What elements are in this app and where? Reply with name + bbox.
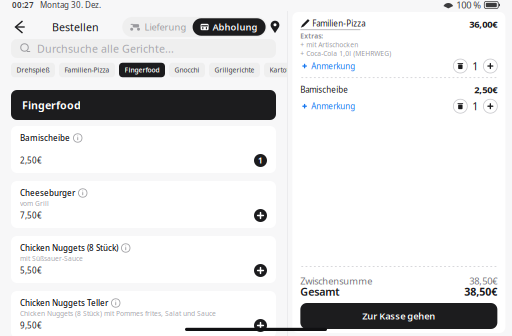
button[interactable]: Familien-Pizza (59, 63, 115, 77)
staticText: 1 (472, 99, 478, 113)
button[interactable]: Durchsuche alle Gerichte... (11, 39, 276, 58)
staticText: Fingerfood (124, 66, 159, 74)
staticText: Familien-Pizza (64, 66, 109, 74)
staticText: + mit Artischocken (300, 40, 358, 49)
staticText: Bamischeibe (20, 133, 70, 143)
button[interactable]: Entfernen (453, 59, 467, 73)
staticText: Chicken Nuggets Teller (20, 298, 108, 308)
staticText: Grillgerichte (214, 66, 254, 74)
staticText: 36,00€ (469, 18, 497, 30)
staticText: 38,50€ (469, 275, 497, 287)
staticText: Gesamt (300, 284, 339, 299)
staticText: 38,50€ (464, 284, 497, 299)
button[interactable]: Kartoffelecken (264, 63, 322, 77)
button[interactable]: Chicken Nuggets (8 Stück) (11, 236, 276, 283)
button[interactable]: Anmerkung (300, 101, 355, 111)
staticText: Chicken Nuggets (8 Stück) mit Pommes fri… (20, 309, 216, 318)
button[interactable]: Hinzufügen (483, 59, 497, 73)
staticText: 2,50€ (20, 155, 42, 166)
button[interactable]: Standort (267, 18, 283, 36)
button[interactable]: Zurück (9, 17, 29, 37)
button[interactable]: Zur Kasse gehen (300, 303, 497, 329)
button[interactable]: Gnocchi (169, 63, 205, 77)
staticText: Zwischensumme (300, 275, 372, 287)
staticText: 2,50€ (474, 83, 497, 96)
staticText: 1 (258, 155, 263, 166)
button[interactable]: Fingerfood (119, 63, 165, 77)
button[interactable]: Drehspieß (11, 63, 55, 77)
staticText: vom Grill (20, 199, 49, 208)
staticText: Familien-Pizza (312, 18, 365, 29)
staticText: Abholung (213, 21, 258, 33)
staticText: Gnocchi (174, 66, 199, 74)
staticText: 7,50€ (20, 210, 42, 221)
button[interactable]: Cheeseburger (11, 181, 276, 228)
staticText: Montag 30. Dez. (40, 0, 101, 10)
staticText: Lieferung (145, 21, 187, 33)
staticText: Bestellen (52, 20, 99, 34)
button[interactable]: Abholung (193, 18, 266, 36)
staticText: Anmerkung (311, 101, 355, 111)
staticText: Durchsuche alle Gerichte... (37, 41, 174, 56)
button[interactable]: Entfernen (453, 99, 467, 113)
staticText: 9,50€ (20, 320, 42, 331)
staticText: Bamischeibe (300, 84, 348, 95)
staticText: 1 (472, 59, 478, 73)
staticText: mit Süßsauer-Sauce (20, 254, 83, 263)
staticText: 100 % (456, 0, 481, 11)
button[interactable]: Bamischeibe (11, 126, 276, 173)
staticText: 00:27 (12, 0, 34, 10)
staticText: Kartoffelecken (269, 66, 316, 74)
button[interactable]: Hinzufügen (483, 99, 497, 113)
staticText: Extras: (300, 31, 323, 40)
button[interactable]: Anmerkung (300, 61, 355, 71)
staticText: 5,50€ (20, 265, 42, 276)
button[interactable]: Grillgerichte (209, 63, 260, 77)
staticText: Anmerkung (311, 61, 355, 71)
staticText: Cheeseburger (20, 188, 75, 198)
button[interactable]: Lieferung (124, 18, 193, 36)
staticText: Fingerfood (22, 98, 81, 112)
button[interactable]: Chicken Nuggets Teller (11, 291, 276, 336)
staticText: + Coca-Cola 1,0l (MEHRWEG) (300, 49, 391, 58)
staticText: Drehspieß (16, 66, 49, 74)
staticText: Zur Kasse gehen (362, 310, 435, 322)
staticText: Chicken Nuggets (8 Stück) (20, 243, 118, 253)
